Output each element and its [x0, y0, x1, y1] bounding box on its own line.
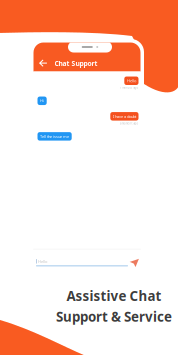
button[interactable]: Back — [36, 55, 50, 71]
staticText: Hello — [127, 78, 136, 83]
staticText: Hi — [40, 98, 44, 103]
staticText: Hello — [38, 259, 47, 264]
staticText: Assistive Chat — [66, 287, 161, 305]
staticText: a moment ago — [119, 122, 138, 125]
staticText: Tell the issue me — [40, 134, 69, 139]
staticText: I have a doubt — [113, 114, 136, 119]
staticText: Chat Support — [54, 59, 97, 68]
staticText: 1 minute ago — [119, 86, 138, 89]
button[interactable]: Send — [129, 258, 138, 266]
staticText: Support & Service — [56, 308, 172, 325]
